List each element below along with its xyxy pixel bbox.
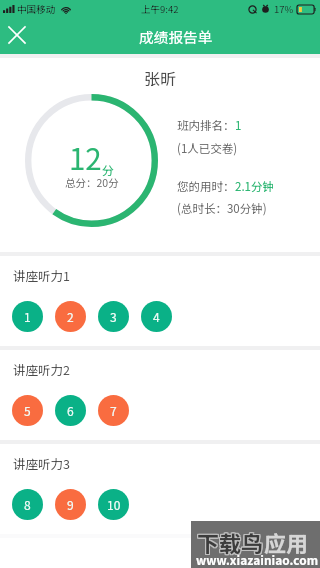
- staticText: 成绩报告单: [139, 26, 213, 47]
- staticText: 2: [67, 308, 74, 325]
- staticText: 4: [153, 308, 160, 325]
- staticText: 下载鸟: [198, 525, 265, 557]
- staticText: www.xiazainiao.com: [196, 551, 319, 568]
- staticText: 下载鸟: [197, 525, 264, 557]
- button[interactable]: 9: [55, 489, 86, 520]
- staticText: 应用: [263, 527, 308, 559]
- staticText: 应用: [265, 527, 310, 559]
- staticText: 下载鸟: [196, 526, 263, 558]
- staticText: 分: [102, 161, 115, 178]
- staticText: 17%: [274, 2, 294, 16]
- button[interactable]: 6: [55, 395, 86, 426]
- button[interactable]: 4: [141, 301, 172, 332]
- staticText: 2.1分钟: [235, 178, 274, 195]
- staticText: 应用: [265, 526, 310, 558]
- staticText: 讲座听力1: [13, 266, 70, 284]
- staticText: 8: [24, 496, 31, 513]
- staticText: (总时长：30分钟): [177, 200, 267, 217]
- button[interactable]: 3: [98, 301, 129, 332]
- staticText: 下载鸟: [198, 527, 265, 559]
- staticText: 下载鸟: [197, 526, 264, 558]
- button[interactable]: 1: [12, 301, 43, 332]
- staticText: 班内排名：: [177, 117, 235, 134]
- staticText: 讲座听力3: [13, 454, 70, 472]
- staticText: 应用: [263, 526, 308, 558]
- staticText: 10: [107, 496, 121, 513]
- staticText: 应用: [264, 526, 309, 558]
- button[interactable]: Close: [2, 20, 32, 50]
- staticText: 12: [69, 136, 102, 179]
- staticText: 3: [110, 308, 117, 325]
- staticText: 6: [67, 402, 74, 419]
- staticText: 1: [235, 117, 242, 134]
- staticText: 应用: [263, 525, 308, 557]
- button[interactable]: 8: [12, 489, 43, 520]
- staticText: 下载鸟: [196, 525, 263, 557]
- button[interactable]: 7: [98, 395, 129, 426]
- staticText: 上午9:42: [141, 2, 179, 16]
- staticText: 5: [24, 402, 31, 419]
- staticText: 张昕: [0, 66, 320, 89]
- staticText: 中国移动: [17, 2, 56, 16]
- button[interactable]: 2: [55, 301, 86, 332]
- staticText: 应用: [264, 525, 309, 557]
- staticText: 应用: [264, 527, 309, 559]
- staticText: 总分：20分: [65, 175, 119, 190]
- staticText: 您的用时：: [177, 178, 235, 195]
- staticText: 下载鸟: [196, 527, 263, 559]
- staticText: 应用: [265, 525, 310, 557]
- staticText: 下载鸟: [197, 527, 264, 559]
- staticText: 7: [110, 402, 117, 419]
- staticText: (1人已交卷): [177, 140, 238, 157]
- staticText: 1: [24, 308, 31, 325]
- staticText: 下载鸟: [198, 526, 265, 558]
- staticText: 9: [67, 496, 74, 513]
- button[interactable]: 10: [98, 489, 129, 520]
- staticText: 讲座听力2: [13, 360, 70, 378]
- button[interactable]: 5: [12, 395, 43, 426]
